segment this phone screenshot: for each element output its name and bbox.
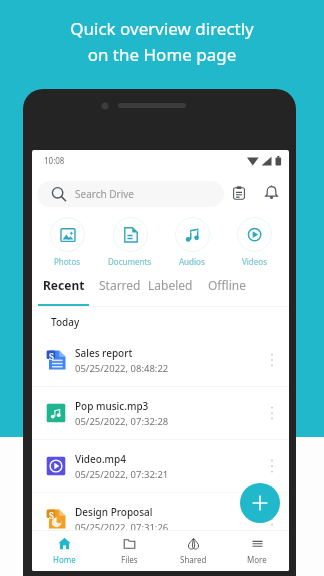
button[interactable]: Home (32, 531, 97, 571)
staticText: S (49, 351, 54, 360)
button[interactable]: Files (97, 531, 161, 571)
staticText: Photos (54, 256, 81, 267)
button[interactable]: Video.mp4 (32, 440, 289, 492)
staticText: Documents (108, 256, 152, 267)
staticText: Home (53, 554, 76, 565)
button[interactable]: Audios (161, 211, 223, 267)
button[interactable]: Clipboard (227, 181, 250, 204)
staticText: 05/25/2022, 07:32:28 (75, 415, 169, 428)
button[interactable]: Documents (99, 211, 161, 267)
staticText: Files (121, 554, 138, 565)
staticText: Sales report (75, 346, 133, 360)
staticText: Pop music.mp3 (75, 399, 149, 413)
button[interactable]: Recent (38, 270, 90, 307)
staticText: S (49, 510, 54, 519)
button[interactable]: More options (260, 507, 284, 531)
staticText: Quick overview directly on the Home page (0, 17, 324, 66)
staticText: Offline (208, 277, 247, 293)
button[interactable]: Videos (223, 211, 285, 267)
button[interactable]: Starred (94, 270, 146, 307)
staticText: Videos (242, 256, 267, 267)
staticText: Starred (99, 277, 141, 293)
staticText: Today (51, 315, 80, 329)
button[interactable]: Search Drive (37, 181, 224, 207)
staticText: Search Drive (75, 187, 134, 201)
staticText: More (247, 554, 267, 565)
button[interactable]: More options (260, 348, 284, 372)
button[interactable]: Pop music.mp3 (32, 387, 289, 439)
button[interactable]: Labeled (144, 270, 197, 307)
staticText: 05/25/2022, 07:31:26 (75, 521, 169, 534)
button[interactable]: More options (260, 454, 284, 478)
button[interactable]: Offline (204, 270, 251, 307)
button[interactable]: Notifications (260, 181, 283, 204)
staticText: Labeled (148, 277, 193, 293)
staticText: Recent (43, 277, 85, 293)
staticText: Design Proposal (75, 505, 153, 519)
button[interactable]: Shared (161, 531, 225, 571)
button[interactable]: More (225, 531, 289, 571)
staticText: 05/25/2022, 08:48:22 (75, 362, 169, 375)
button[interactable]: More options (260, 401, 284, 425)
button[interactable]: Photos (36, 211, 99, 267)
button[interactable]: S (32, 493, 289, 545)
staticText: 05/25/2022, 07:32:21 (75, 468, 169, 481)
staticText: Shared (180, 554, 207, 565)
staticText: Audios (179, 256, 205, 267)
button[interactable]: Create new (240, 483, 280, 523)
button[interactable]: S (32, 334, 289, 386)
staticText: 10:08 (44, 155, 65, 166)
staticText: Video.mp4 (75, 452, 127, 466)
